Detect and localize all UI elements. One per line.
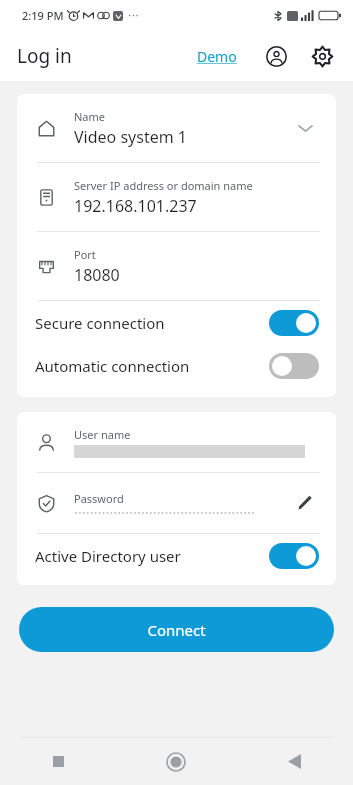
button[interactable]: On: [269, 543, 319, 569]
staticText: Video system 1: [74, 126, 187, 148]
button[interactable]: Connect: [19, 607, 334, 652]
button[interactable]: Demo: [191, 41, 243, 72]
staticText: Log in: [17, 43, 72, 69]
button[interactable]: On: [269, 310, 319, 336]
button[interactable]: Account: [259, 39, 293, 73]
staticText: Active Directory user: [35, 546, 269, 566]
button[interactable]: Password: [17, 473, 336, 533]
button[interactable]: Back: [235, 738, 353, 785]
staticText: Demo: [197, 47, 237, 66]
button[interactable]: User name: [17, 412, 336, 472]
staticText: 18080: [74, 264, 120, 286]
staticText: 192.168.101.237: [74, 195, 197, 217]
staticText: 2:19 PM: [22, 8, 64, 23]
staticText: User name: [74, 427, 131, 442]
staticText: Name: [74, 109, 106, 124]
button[interactable]: Name: [17, 94, 336, 162]
button[interactable]: Active Directory user: [17, 534, 336, 577]
staticText: Server IP address or domain name: [74, 178, 253, 193]
button[interactable]: Home: [117, 738, 235, 785]
staticText: Secure connection: [35, 313, 269, 333]
staticText: Automatic connection: [35, 356, 269, 376]
staticText: Connect: [147, 620, 206, 640]
staticText: ⋯: [128, 9, 139, 22]
staticText: Port: [74, 247, 96, 262]
button[interactable]: Edit password: [290, 488, 320, 518]
button[interactable]: Port: [17, 232, 336, 300]
button[interactable]: Recents: [0, 738, 117, 785]
staticText: Password: [74, 491, 124, 506]
button[interactable]: Expand: [290, 113, 320, 143]
button[interactable]: Secure connection: [17, 301, 336, 344]
button[interactable]: Settings: [305, 39, 339, 73]
button[interactable]: Off: [269, 353, 319, 379]
button[interactable]: Automatic connection: [17, 344, 336, 387]
button[interactable]: Server IP address or domain name: [17, 163, 336, 231]
